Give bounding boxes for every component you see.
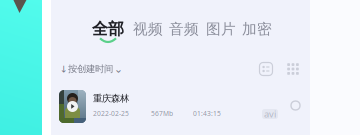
staticText: 567Mb <box>151 109 173 118</box>
button[interactable]: 全部 <box>92 20 124 43</box>
button[interactable]: ↓按创建时间 <box>60 63 123 75</box>
staticText: 01:43:15 <box>193 109 221 118</box>
staticText: 音频 <box>169 20 199 38</box>
staticText: avi <box>264 108 276 120</box>
button[interactable]: 图片 <box>206 20 236 43</box>
staticText: 全部 <box>92 19 124 39</box>
staticText: 重庆森林 <box>93 93 129 104</box>
staticText: 加密 <box>242 20 272 38</box>
button[interactable]: List view <box>258 61 274 77</box>
staticText: ⌄ <box>114 63 123 75</box>
staticText: 图片 <box>206 20 236 38</box>
button[interactable]: Grid view <box>285 61 301 77</box>
button[interactable]: 加密 <box>242 20 272 43</box>
staticText: 2022-02-25 <box>93 109 129 118</box>
staticText: 视频 <box>133 20 163 38</box>
button[interactable]: 视频 <box>133 20 163 43</box>
button[interactable]: 重庆森林 <box>51 90 310 124</box>
staticText: ↓按创建时间 <box>60 63 113 75</box>
button[interactable]: 音频 <box>169 20 199 43</box>
